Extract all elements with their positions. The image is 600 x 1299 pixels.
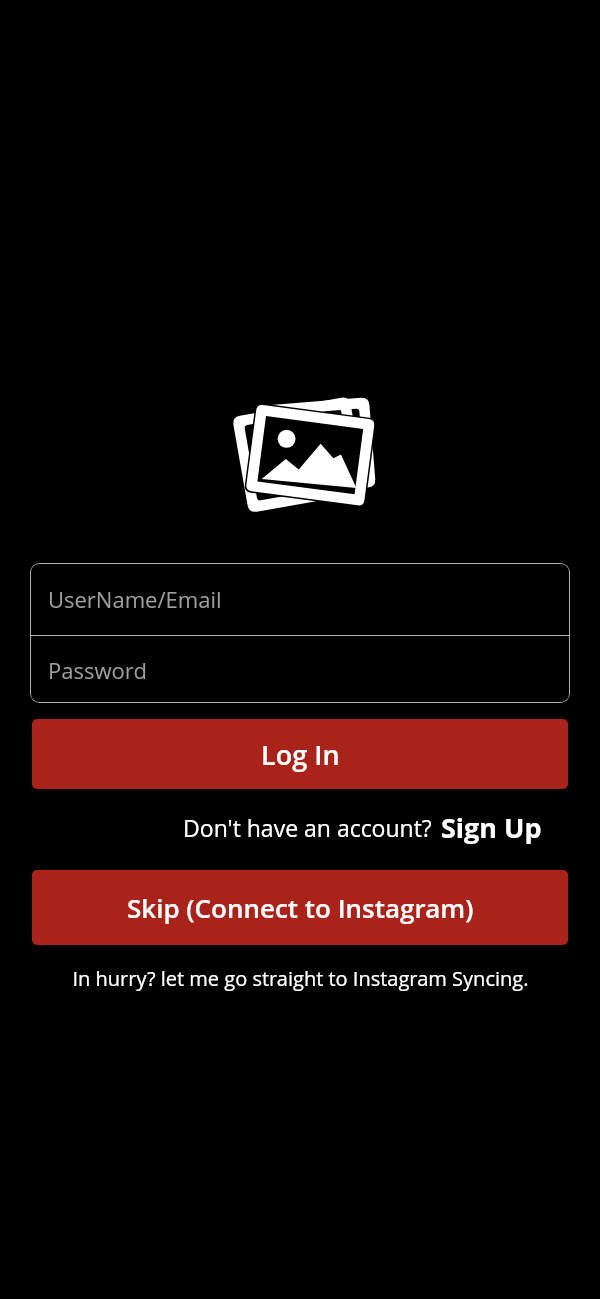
staticText: Sign Up bbox=[441, 809, 542, 846]
button[interactable]: Skip (Connect to Instagram) bbox=[32, 870, 568, 945]
staticText: Password bbox=[48, 655, 147, 685]
staticText: Skip (Connect to Instagram) bbox=[127, 890, 474, 925]
staticText: UserName/Email bbox=[48, 584, 222, 614]
staticText: Don't have an account? bbox=[183, 812, 432, 843]
other: Photos bbox=[224, 394, 376, 514]
staticText: Log In bbox=[261, 736, 340, 773]
staticText: In hurry? let me go straight to Instagra… bbox=[72, 965, 529, 992]
button[interactable]: Sign Up bbox=[441, 809, 542, 846]
button[interactable]: Log In bbox=[32, 719, 568, 789]
button[interactable]: Password bbox=[30, 636, 570, 703]
button[interactable]: UserName/Email bbox=[30, 563, 570, 635]
